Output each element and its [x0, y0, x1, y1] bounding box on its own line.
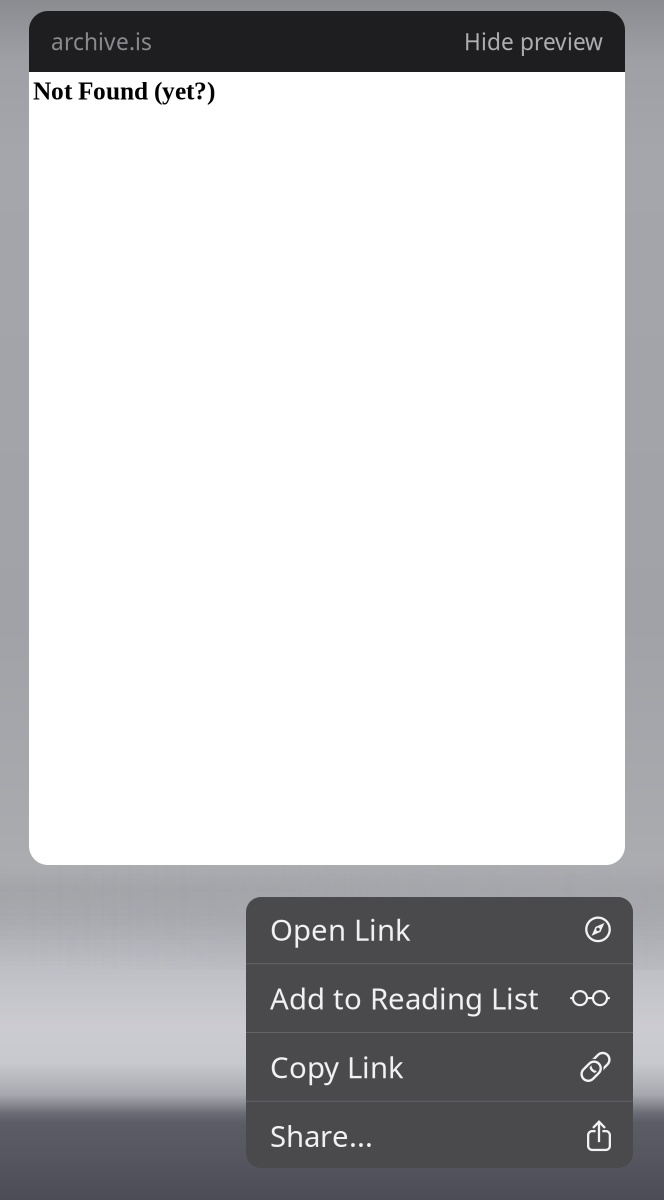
button[interactable]: Add to Reading List	[246, 964, 633, 1032]
staticText: Not Found (yet?)	[33, 77, 215, 105]
staticText: Hide preview	[464, 26, 603, 56]
staticText: archive.is	[51, 26, 152, 56]
staticText: Open Link	[270, 910, 411, 949]
button[interactable]: Copy Link	[246, 1033, 633, 1101]
button[interactable]: Share...	[246, 1102, 633, 1170]
staticText: Share...	[270, 1116, 373, 1155]
staticText: Copy Link	[270, 1047, 404, 1086]
button[interactable]: Hide preview	[464, 26, 603, 56]
staticText: Add to Reading List	[270, 979, 539, 1018]
button[interactable]: Open Link	[246, 895, 633, 963]
